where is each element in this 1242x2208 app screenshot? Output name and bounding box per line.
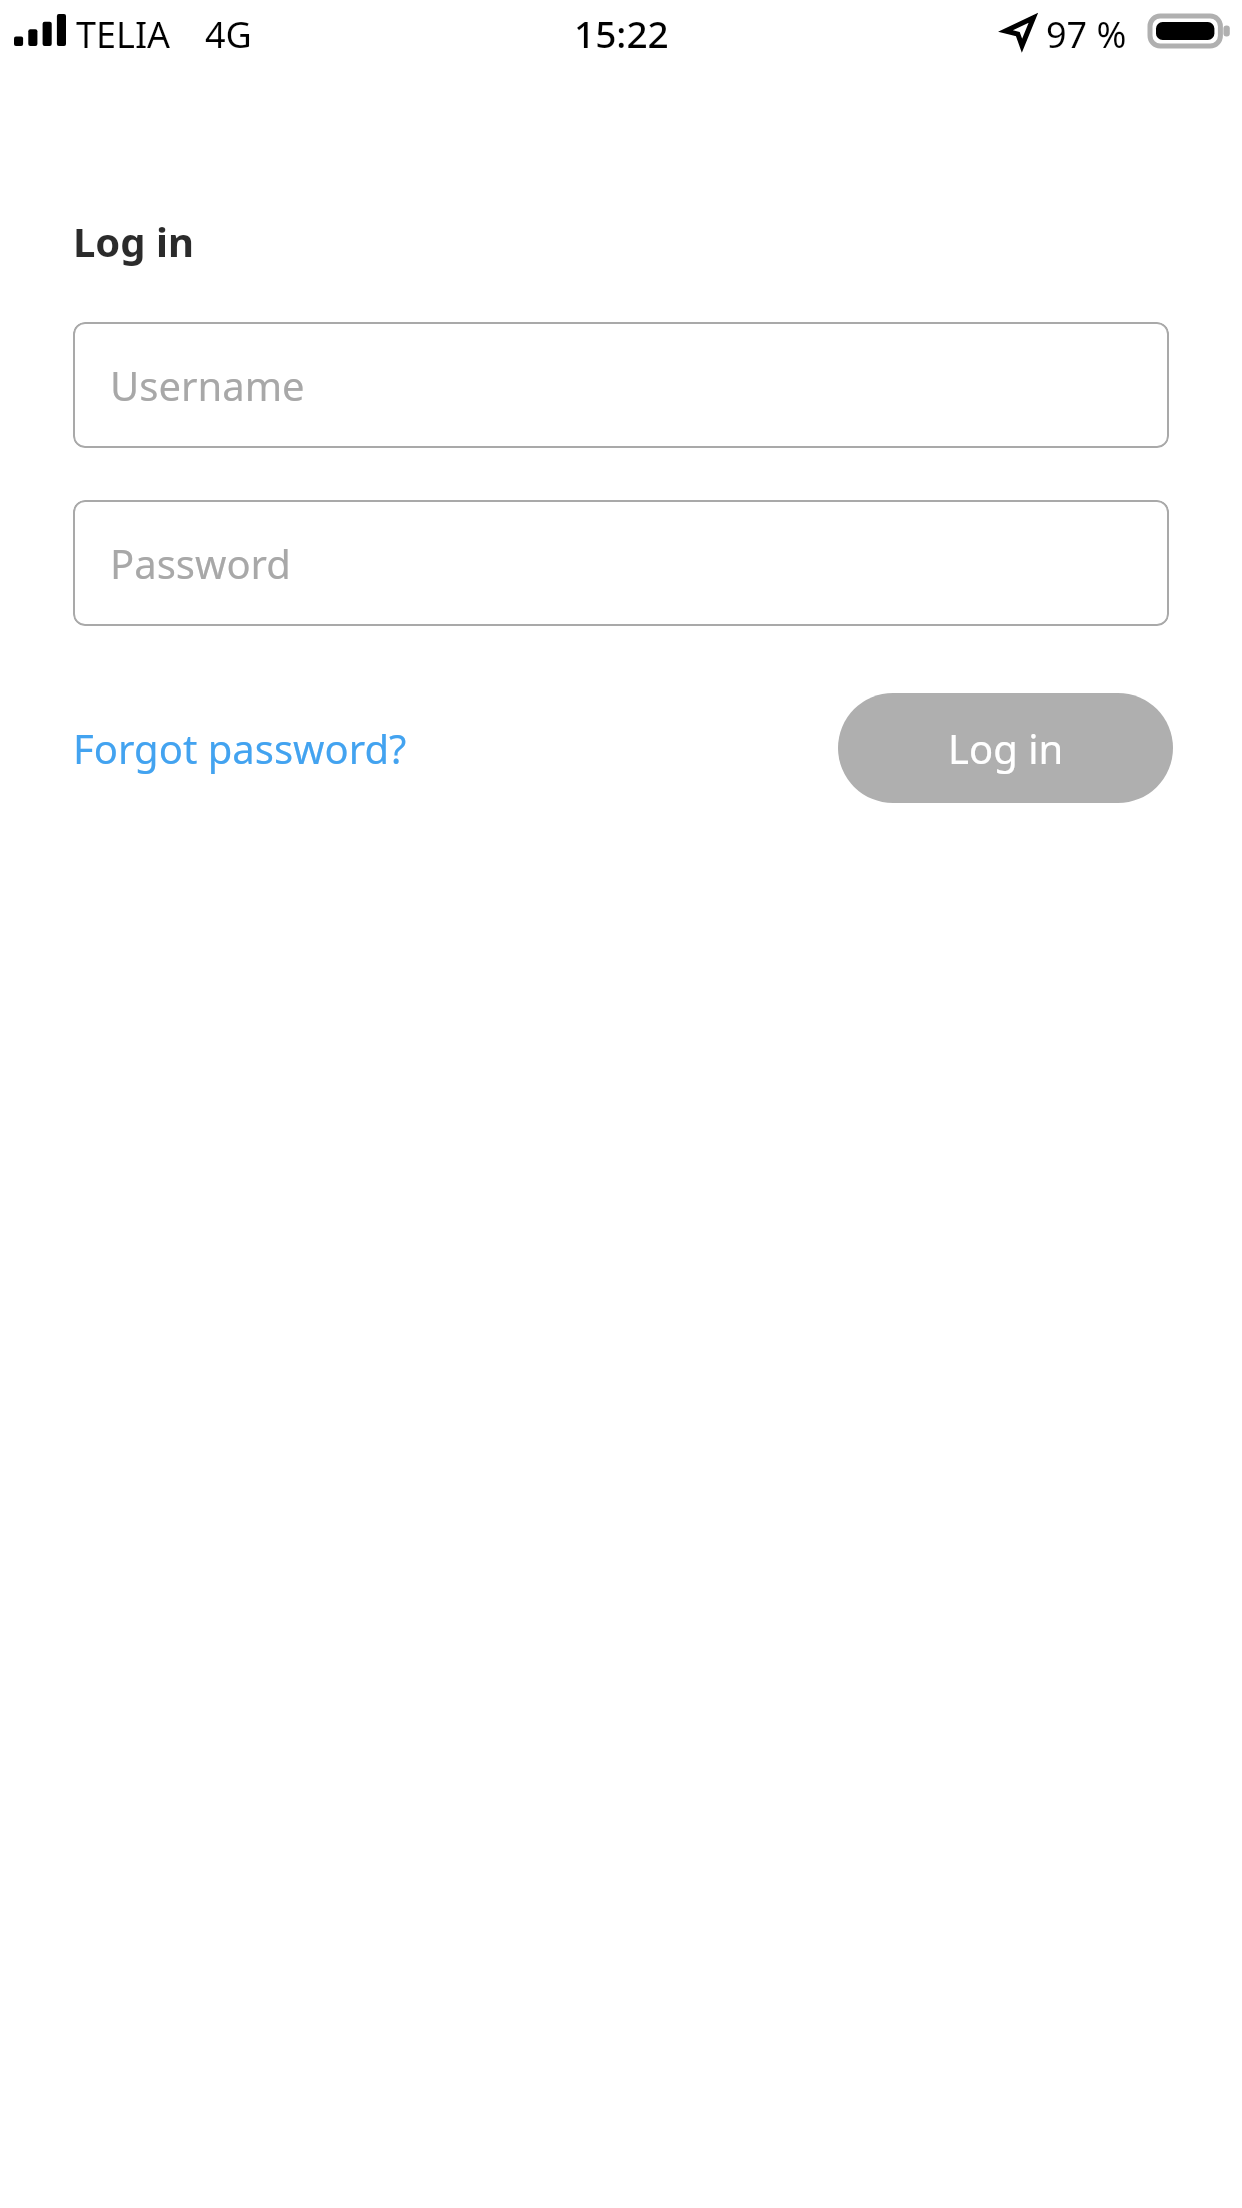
staticText: Log in bbox=[73, 214, 194, 268]
staticText: 4G bbox=[205, 10, 252, 59]
button[interactable]: Username bbox=[73, 322, 1169, 448]
staticText: 97 % bbox=[1046, 10, 1127, 59]
staticText: TELIA bbox=[76, 10, 171, 59]
button[interactable]: Password bbox=[73, 500, 1169, 626]
staticText: Log in bbox=[948, 721, 1064, 775]
staticText: Username bbox=[110, 358, 305, 412]
staticText: Forgot password? bbox=[73, 721, 407, 775]
button[interactable]: Log in bbox=[838, 693, 1173, 803]
button[interactable]: Forgot password? bbox=[73, 715, 407, 781]
staticText: 15:22 bbox=[574, 8, 669, 58]
staticText: Password bbox=[110, 536, 291, 590]
